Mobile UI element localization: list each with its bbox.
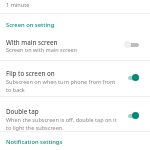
button[interactable]: Double tap bbox=[0, 97, 150, 131]
staticText: Flip to screen on bbox=[6, 69, 118, 77]
button[interactable]: Flip to screen on bbox=[0, 61, 150, 96]
staticText: Subscreen on when turn phone from front … bbox=[6, 78, 118, 94]
button[interactable]: 1 minute bbox=[0, 0, 150, 13]
staticText: Screen on with main screen bbox=[6, 46, 118, 53]
button[interactable]: Notification settings bbox=[0, 132, 150, 150]
button[interactable]: With main screen, off bbox=[124, 39, 138, 49]
staticText: When the subscreen is off, double tap on… bbox=[6, 116, 118, 132]
staticText: With main screen bbox=[6, 38, 118, 46]
staticText: Notification settings bbox=[6, 138, 63, 146]
staticText: 1 minute bbox=[6, 1, 30, 9]
button[interactable]: Flip to screen on, on bbox=[124, 72, 138, 82]
button[interactable]: Screen on setting bbox=[0, 14, 150, 31]
button[interactable]: Double tap, on bbox=[124, 110, 138, 120]
button[interactable]: With main screen bbox=[0, 31, 150, 60]
staticText: Double tap bbox=[6, 107, 118, 115]
staticText: Screen on setting bbox=[6, 21, 55, 29]
